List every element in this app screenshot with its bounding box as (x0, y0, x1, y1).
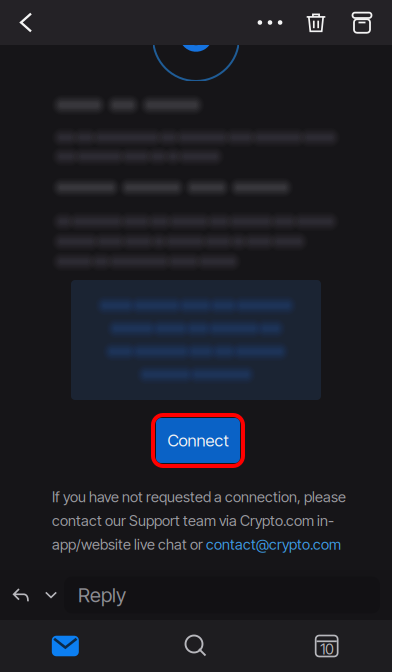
staticText: app/website live chat or (52, 535, 206, 553)
staticText: If you have not requested a connection, … (52, 488, 346, 506)
button[interactable]: Connect (156, 418, 240, 463)
staticText: Reply (78, 583, 126, 607)
button[interactable]: Reply (4, 576, 38, 614)
button[interactable]: Calendar (261, 620, 392, 672)
button[interactable]: Archive (339, 0, 385, 45)
staticText: 10 (320, 640, 333, 658)
button[interactable]: Search (131, 620, 261, 672)
button[interactable]: Reply options (38, 576, 64, 614)
button[interactable]: Reply (64, 576, 380, 613)
staticText: contact our Support team via Crypto.com … (52, 512, 334, 529)
button[interactable]: Mail (0, 620, 131, 672)
staticText: Connect (167, 430, 228, 451)
button[interactable]: Delete (293, 0, 339, 45)
button[interactable]: Back (3, 0, 49, 45)
staticText: contact@crypto.com (206, 535, 341, 553)
button[interactable]: More (247, 0, 293, 45)
